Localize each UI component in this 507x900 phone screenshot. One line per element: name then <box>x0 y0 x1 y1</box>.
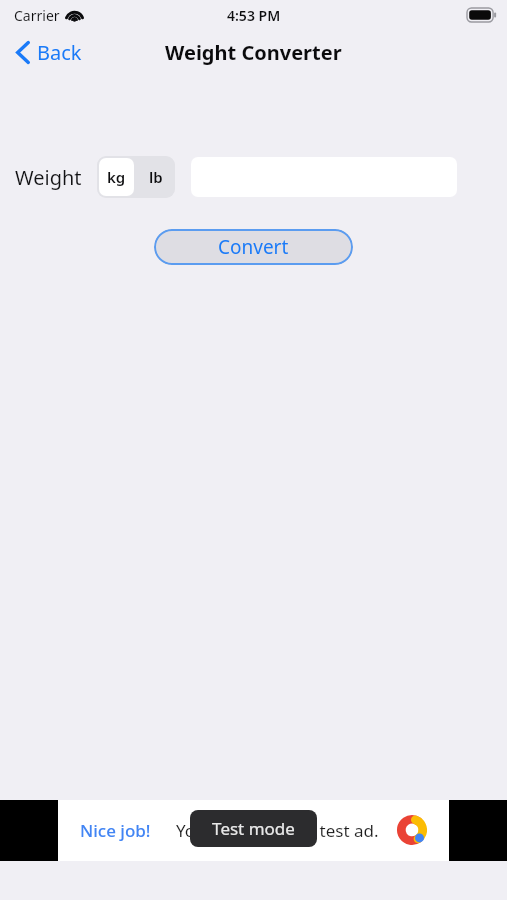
staticText: kg <box>107 167 126 187</box>
staticText: 4:53 PM <box>227 6 281 25</box>
staticText: Test mode <box>212 817 295 840</box>
staticText: You are viewing a test ad. <box>176 819 379 842</box>
button[interactable]: Test mode <box>190 810 317 847</box>
staticText: Weight Converter <box>165 39 342 66</box>
other: AdMob <box>395 814 429 848</box>
staticText: Back <box>37 39 82 66</box>
button[interactable]: lb <box>136 156 175 198</box>
button[interactable]: kg <box>99 158 134 196</box>
staticText: Carrier <box>14 6 60 25</box>
button[interactable]: Nice job! <box>58 800 449 861</box>
staticText: Nice job! <box>80 819 151 842</box>
staticText: Convert <box>218 234 289 260</box>
button[interactable]: Back <box>12 35 86 70</box>
staticText: Weight <box>15 164 82 191</box>
staticText: lb <box>149 167 163 187</box>
button[interactable]: Convert <box>154 229 353 265</box>
